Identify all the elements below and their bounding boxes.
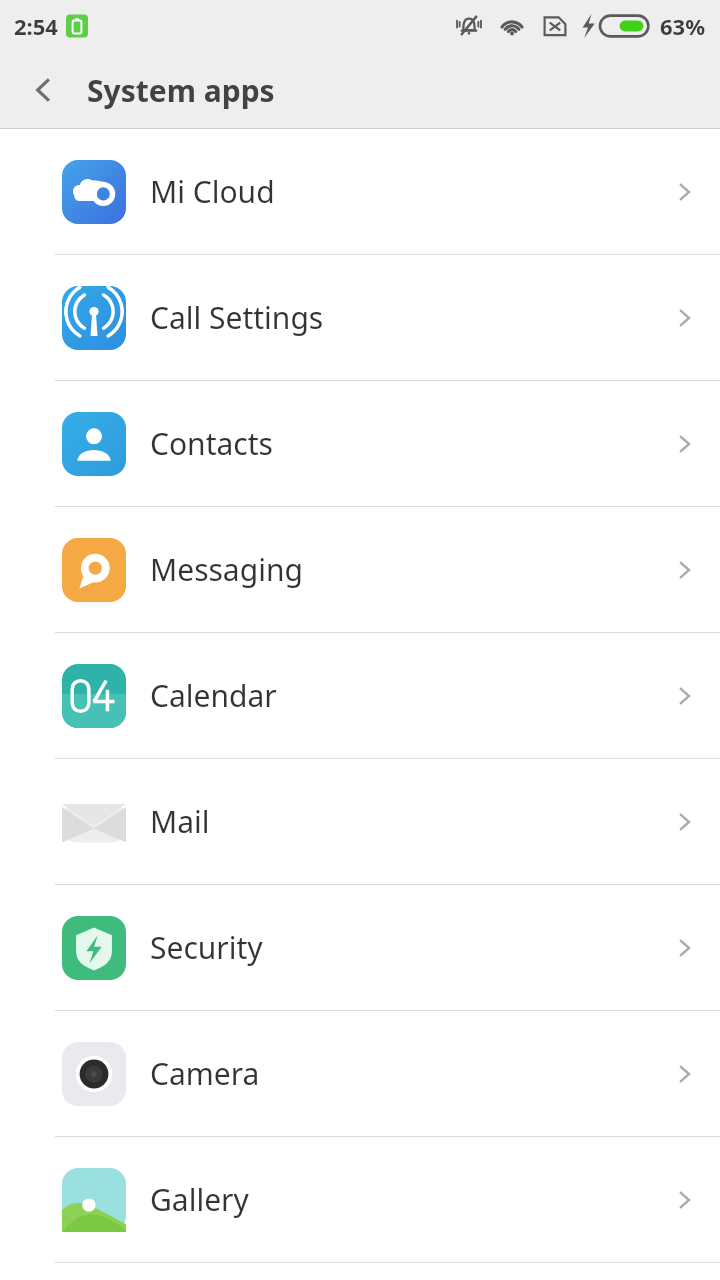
staticText: System apps	[87, 70, 275, 111]
staticText: Messaging	[150, 549, 648, 590]
staticText: Call Settings	[150, 297, 648, 338]
staticText: 2:54	[14, 11, 58, 41]
staticText: Camera	[150, 1053, 648, 1094]
button[interactable]: Back	[15, 62, 71, 118]
button[interactable]: Security	[0, 885, 720, 1010]
staticText: Mail	[150, 801, 648, 842]
staticText: Mi Cloud	[150, 171, 648, 212]
button[interactable]: Calendar	[0, 633, 720, 758]
button[interactable]: Messaging	[0, 507, 720, 632]
button[interactable]: Camera	[0, 1011, 720, 1136]
staticText: 63%	[660, 11, 706, 41]
button[interactable]: Contacts	[0, 381, 720, 506]
button[interactable]: Call Settings	[0, 255, 720, 380]
staticText: Contacts	[150, 423, 648, 464]
staticText: Calendar	[150, 675, 648, 716]
staticText: Security	[150, 927, 648, 968]
button[interactable]: Mi Cloud	[0, 129, 720, 254]
button[interactable]: Gallery	[0, 1137, 720, 1262]
staticText: Gallery	[150, 1179, 648, 1220]
button[interactable]: Mail	[0, 759, 720, 884]
